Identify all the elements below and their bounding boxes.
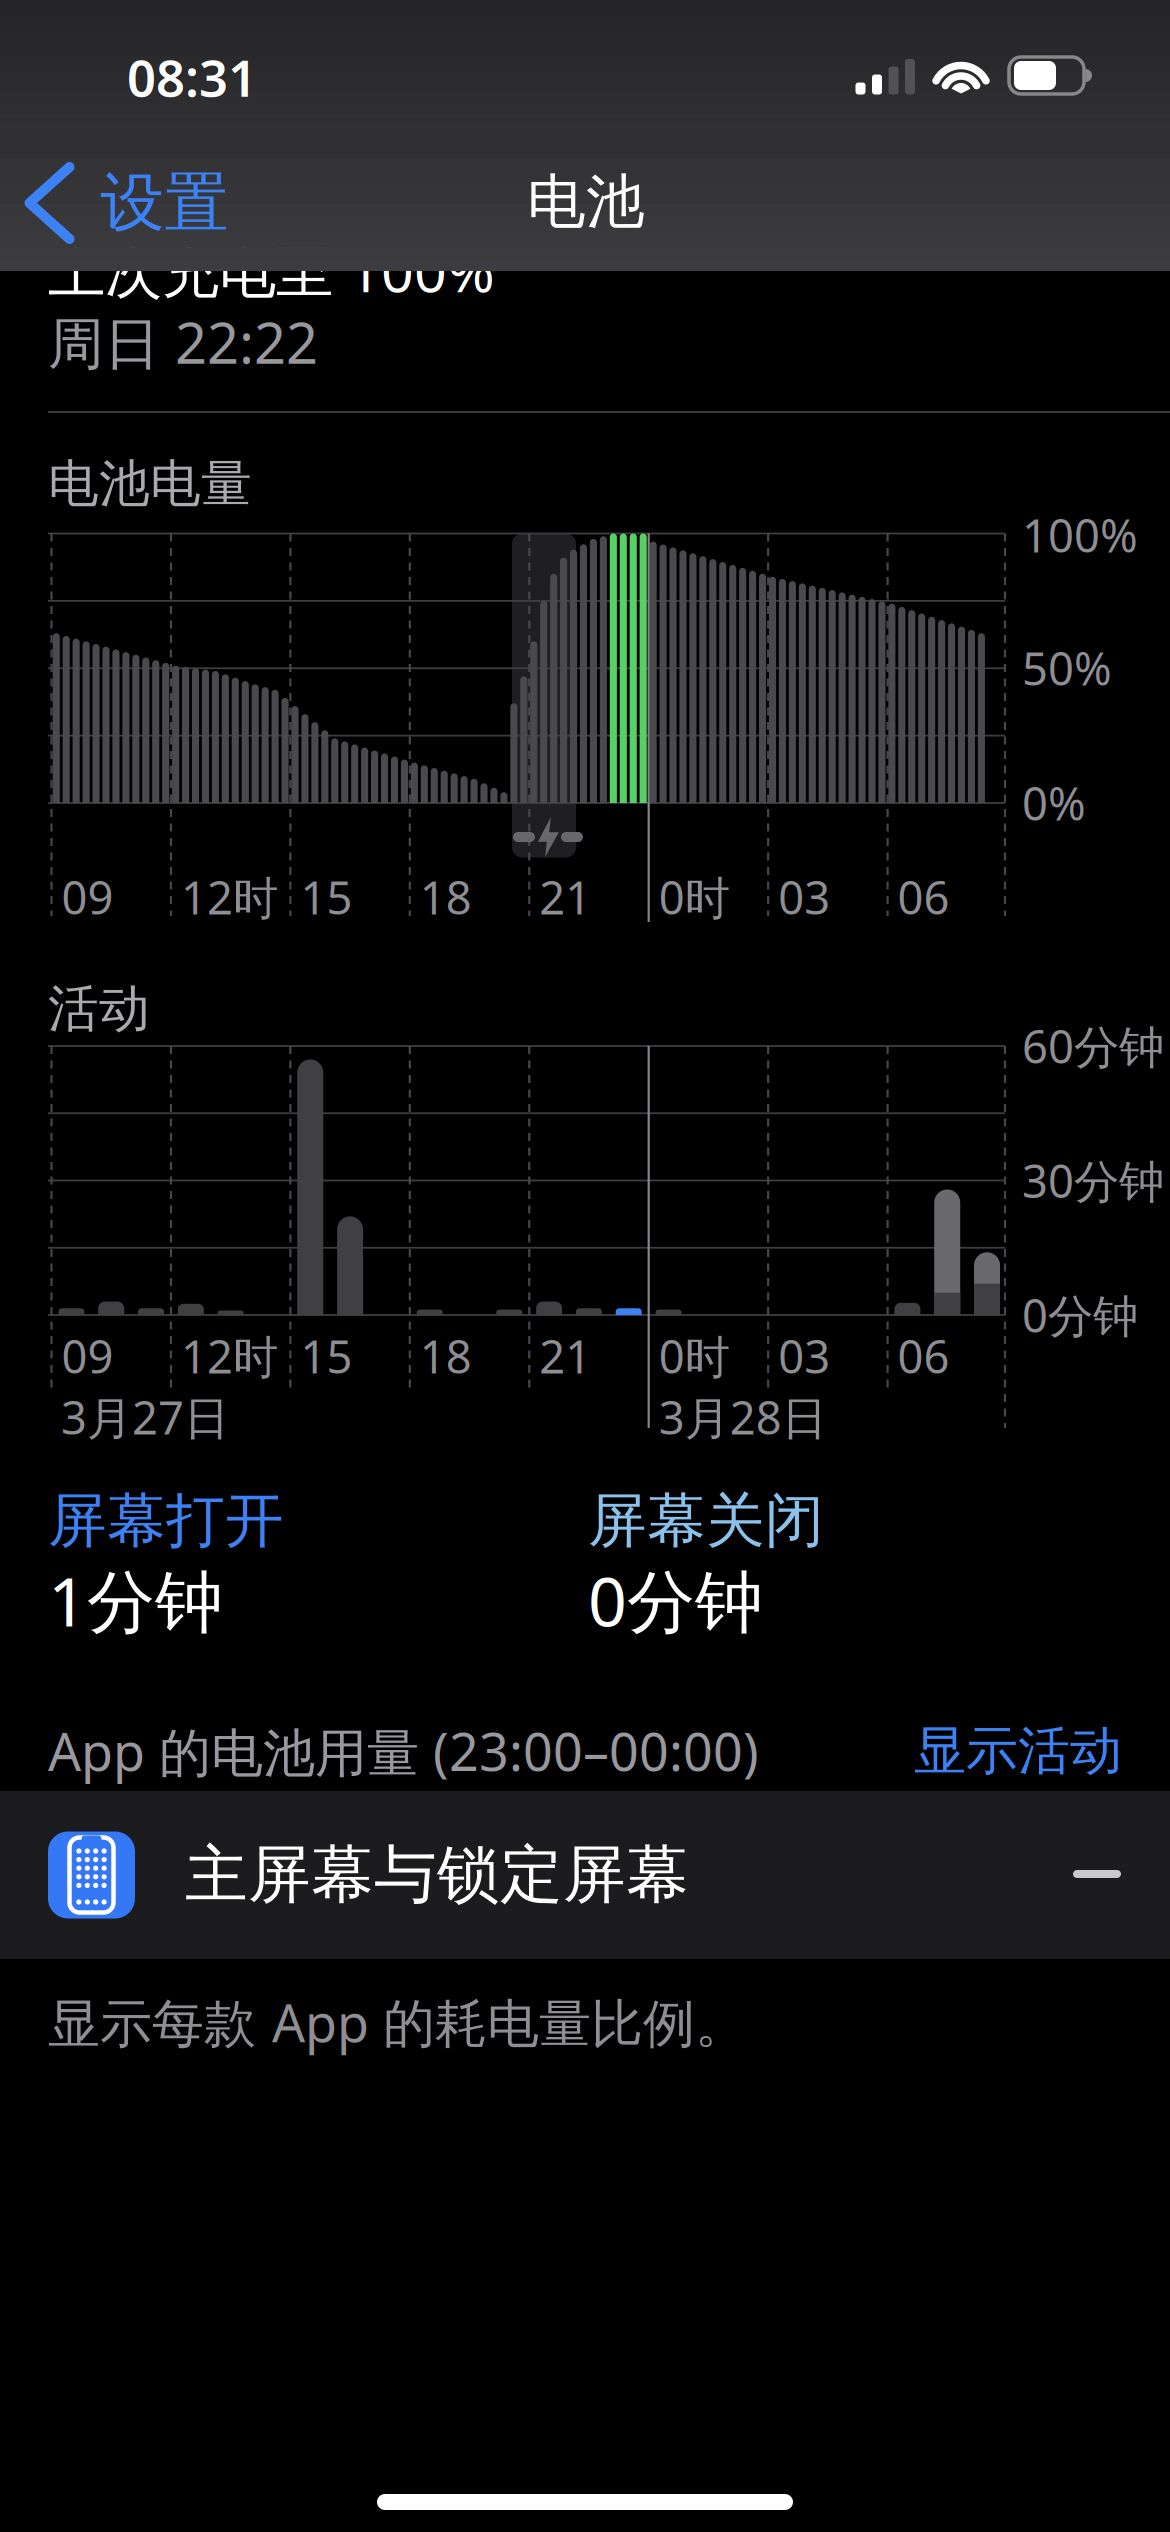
staticText: 03 xyxy=(778,1326,830,1386)
staticText: 1分钟 xyxy=(48,1555,223,1645)
button[interactable]: 设置 xyxy=(29,164,228,242)
staticText: 电池 xyxy=(527,166,645,238)
staticText: 08:31 xyxy=(127,43,257,111)
staticText: 屏幕打开 xyxy=(48,1485,284,1557)
staticText: 活动 xyxy=(48,978,150,1040)
staticText: 100% xyxy=(1022,505,1138,565)
staticText: 主屏幕与锁定屏幕 xyxy=(185,1836,689,1913)
button[interactable]: 显示活动 xyxy=(910,1719,1122,1783)
staticText: 60分钟 xyxy=(1022,1016,1164,1076)
staticText: 0分钟 xyxy=(588,1555,763,1645)
staticText: 0% xyxy=(1022,773,1086,833)
staticText: 21 xyxy=(539,867,591,927)
staticText: 18 xyxy=(420,1326,472,1386)
staticText: 3月27日 xyxy=(61,1387,229,1447)
staticText: 显示每款 App 的耗电量比例。 xyxy=(48,1987,747,2057)
staticText: 03 xyxy=(778,867,830,927)
staticText: 21 xyxy=(539,1326,591,1386)
staticText: 12时 xyxy=(181,1326,278,1386)
staticText: 显示活动 xyxy=(914,1719,1122,1783)
staticText: 0分钟 xyxy=(1022,1285,1138,1345)
staticText: App 的电池用量 (23:00–00:00) xyxy=(48,1716,759,1786)
button[interactable]: 主屏幕与锁定屏幕 xyxy=(0,1791,1170,1959)
staticText: 09 xyxy=(61,867,113,927)
staticText: 上次充电至 100% xyxy=(48,232,495,308)
staticText: 屏幕关闭 xyxy=(588,1485,824,1557)
staticText: 3月28日 xyxy=(659,1387,827,1447)
staticText: 30分钟 xyxy=(1022,1150,1164,1211)
staticText: 电池电量 xyxy=(48,453,252,515)
staticText: 设置 xyxy=(100,164,228,242)
staticText: 06 xyxy=(898,1326,950,1386)
staticText: 06 xyxy=(898,867,950,927)
staticText: 12时 xyxy=(181,867,278,927)
staticText: 周日 22:22 xyxy=(48,305,318,379)
staticText: 50% xyxy=(1022,638,1112,698)
staticText: 0时 xyxy=(659,867,730,927)
staticText: 15 xyxy=(300,1326,352,1386)
staticText: 09 xyxy=(61,1326,113,1386)
staticText: 18 xyxy=(420,867,472,927)
staticText: 15 xyxy=(300,867,352,927)
staticText: 0时 xyxy=(659,1326,730,1386)
